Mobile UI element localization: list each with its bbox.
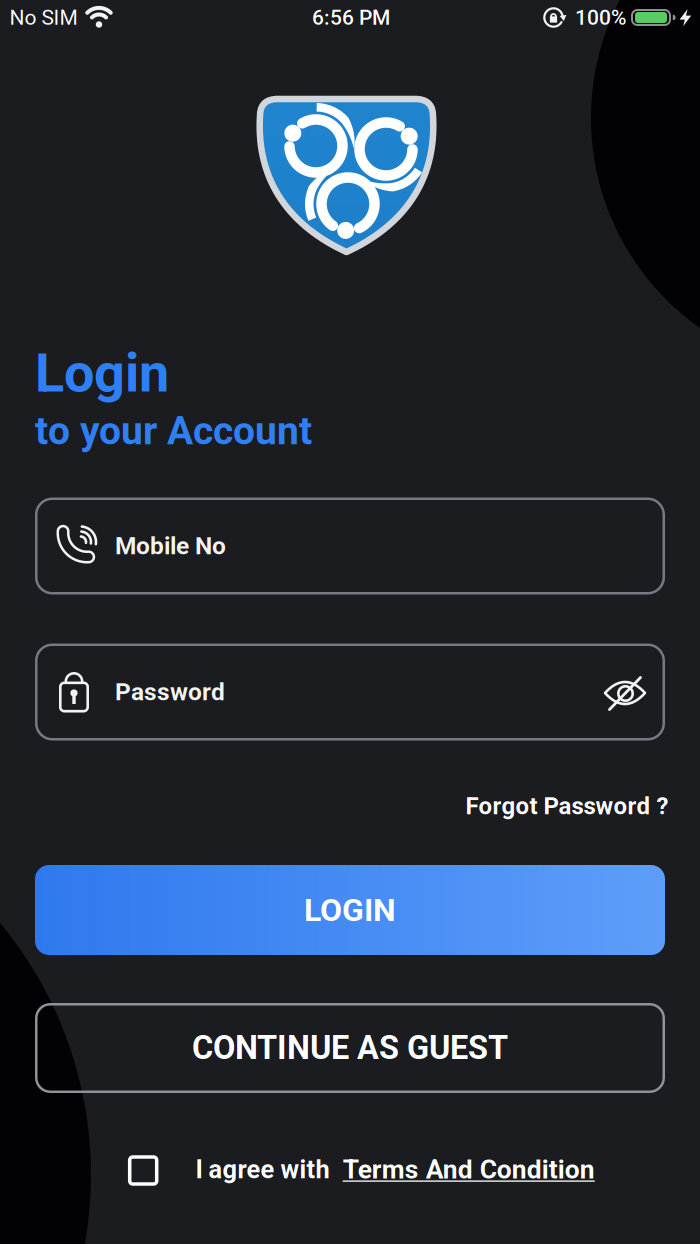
button[interactable]: Terms And Condition bbox=[343, 1154, 595, 1185]
staticText: Forgot Password ? bbox=[465, 792, 668, 820]
button[interactable]: Mobile No bbox=[35, 497, 665, 594]
button[interactable]: CONTINUE AS GUEST bbox=[35, 1003, 665, 1093]
button[interactable]: LOGIN bbox=[35, 865, 665, 955]
button[interactable]: Password bbox=[35, 643, 665, 740]
staticText: 6:56 PM bbox=[312, 5, 390, 30]
button[interactable]: Forgot Password ? bbox=[465, 792, 668, 820]
button[interactable]: Agree with terms and condition bbox=[128, 1155, 158, 1186]
staticText: to your Account bbox=[35, 408, 312, 454]
staticText: Login bbox=[35, 341, 169, 405]
staticText: Password bbox=[115, 678, 225, 706]
staticText: CONTINUE AS GUEST bbox=[192, 1029, 508, 1067]
staticText: Mobile No bbox=[115, 532, 226, 560]
button[interactable]: Show password bbox=[597, 667, 653, 719]
staticText: Terms And Condition bbox=[343, 1154, 595, 1185]
staticText: I agree with bbox=[195, 1155, 329, 1184]
staticText: 100% bbox=[575, 5, 626, 30]
staticText: LOGIN bbox=[304, 891, 396, 929]
staticText: No SIM bbox=[9, 5, 77, 30]
